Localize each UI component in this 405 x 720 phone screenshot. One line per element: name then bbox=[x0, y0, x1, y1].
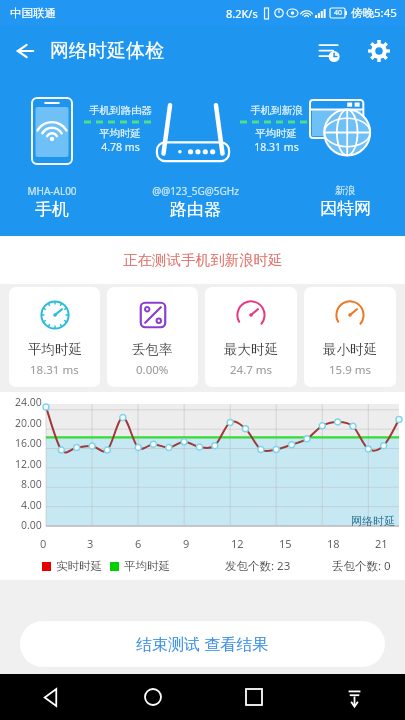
button[interactable]: 最小时延 bbox=[304, 287, 396, 387]
staticText: 0 bbox=[40, 536, 47, 551]
staticText: 傍晚5:45 bbox=[351, 5, 397, 21]
staticText: 24.00 bbox=[15, 395, 42, 409]
staticText: 路由器 bbox=[170, 199, 221, 220]
staticText: 0.00 bbox=[21, 518, 42, 532]
staticText: 结束测试 查看结果 bbox=[136, 633, 269, 655]
staticText: MHA-AL00 bbox=[27, 184, 77, 198]
button[interactable]: Home bbox=[102, 674, 203, 720]
staticText: 16.00 bbox=[15, 436, 42, 450]
staticText: 平均时延 bbox=[124, 559, 170, 573]
staticText: 中国联通 bbox=[10, 6, 56, 20]
staticText: 正在测试手机到新浪时延 bbox=[123, 251, 283, 269]
staticText: 18.31 ms bbox=[30, 362, 79, 378]
staticText: 40 bbox=[334, 8, 343, 18]
button[interactable]: Back bbox=[0, 27, 48, 75]
staticText: 丢包个数: 0 bbox=[332, 558, 391, 574]
staticText: 手机到新浪 bbox=[250, 104, 303, 117]
staticText: 最大时延 bbox=[224, 341, 278, 358]
button[interactable]: Hide navigation bar bbox=[304, 674, 405, 720]
button[interactable]: 丢包率 bbox=[107, 287, 198, 387]
staticText: 12 bbox=[231, 536, 244, 551]
staticText: 21 bbox=[375, 536, 388, 551]
button[interactable]: 平均时延 bbox=[9, 287, 100, 387]
staticText: 平均时延 bbox=[255, 127, 297, 140]
staticText: @@123_5G@5GHz bbox=[152, 184, 239, 198]
staticText: 4.00 bbox=[21, 498, 42, 512]
staticText: 最小时延 bbox=[323, 341, 377, 358]
staticText: 实时时延 bbox=[56, 559, 102, 573]
staticText: 手机到路由器 bbox=[89, 104, 152, 117]
staticText: 丢包率 bbox=[132, 341, 173, 358]
button[interactable]: 最大时延 bbox=[205, 287, 297, 387]
staticText: 8.00 bbox=[21, 477, 42, 491]
staticText: 18.31 ms bbox=[254, 140, 299, 154]
staticText: 网络时延体检 bbox=[50, 39, 164, 63]
staticText: 3 bbox=[87, 536, 94, 551]
staticText: 9 bbox=[183, 536, 190, 551]
staticText: 平均时延 bbox=[99, 127, 141, 140]
button[interactable]: History bbox=[305, 27, 353, 75]
staticText: 因特网 bbox=[320, 198, 371, 219]
staticText: 网络时延 bbox=[351, 514, 395, 528]
staticText: 20.00 bbox=[15, 416, 42, 430]
staticText: 15 bbox=[279, 536, 292, 551]
staticText: 4.78 ms bbox=[101, 140, 140, 154]
button[interactable]: Settings bbox=[353, 26, 405, 76]
staticText: 15.9 ms bbox=[329, 362, 372, 378]
staticText: 12.00 bbox=[15, 457, 42, 471]
staticText: 手机 bbox=[35, 199, 69, 220]
staticText: 平均时延 bbox=[28, 341, 82, 358]
staticText: 24.7 ms bbox=[230, 362, 273, 378]
button[interactable]: 结束测试 查看结果 bbox=[20, 621, 385, 667]
staticText: 新浪 bbox=[335, 184, 355, 197]
button[interactable]: Back bbox=[0, 674, 102, 720]
staticText: 6 bbox=[135, 536, 142, 551]
staticText: 0.00% bbox=[136, 362, 169, 378]
staticText: 发包个数: 23 bbox=[225, 558, 291, 574]
staticText: 18 bbox=[327, 536, 340, 551]
staticText: 8.2K/s bbox=[226, 6, 258, 21]
button[interactable]: Recent apps bbox=[203, 674, 304, 720]
